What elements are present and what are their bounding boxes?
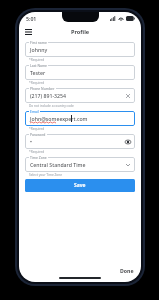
- button[interactable]: Open dropdown: [124, 161, 132, 169]
- staticText: Do not include a country code: [29, 104, 74, 108]
- staticText: 5:01: [26, 15, 37, 22]
- button[interactable]: Done: [118, 266, 136, 275]
- staticText: Time Zone: [30, 155, 47, 160]
- button[interactable]: [25, 65, 135, 80]
- button[interactable]: [25, 42, 135, 57]
- staticText: Last Name: [30, 63, 47, 68]
- staticText: Phone Number: [30, 86, 55, 91]
- button[interactable]: Clear: [124, 92, 132, 100]
- staticText: Select your Time Zone: [29, 173, 63, 177]
- button[interactable]: [25, 111, 135, 126]
- button[interactable]: Show password: [124, 138, 132, 146]
- staticText: *Required: [29, 150, 45, 154]
- staticText: Tester: [30, 69, 46, 76]
- staticText: Johnny: [30, 46, 48, 53]
- staticText: Password: [30, 132, 46, 137]
- button[interactable]: Save: [25, 179, 135, 192]
- button[interactable]: [25, 134, 135, 149]
- staticText: John@someexpert.com: [30, 115, 88, 122]
- staticText: (217) 891-3254: [30, 92, 66, 99]
- staticText: Profile: [71, 28, 90, 36]
- staticText: •: [30, 138, 32, 145]
- staticText: Save: [74, 182, 86, 189]
- staticText: Email: [30, 109, 39, 114]
- staticText: Central Standard Time: [30, 161, 86, 168]
- staticText: First name: [30, 40, 47, 45]
- staticText: *Required: [29, 81, 45, 85]
- staticText: *Required: [29, 127, 45, 131]
- staticText: *Required: [29, 58, 45, 62]
- button[interactable]: Menu: [23, 27, 33, 37]
- button[interactable]: [25, 157, 135, 172]
- button[interactable]: [25, 88, 135, 103]
- staticText: Done: [120, 267, 134, 274]
